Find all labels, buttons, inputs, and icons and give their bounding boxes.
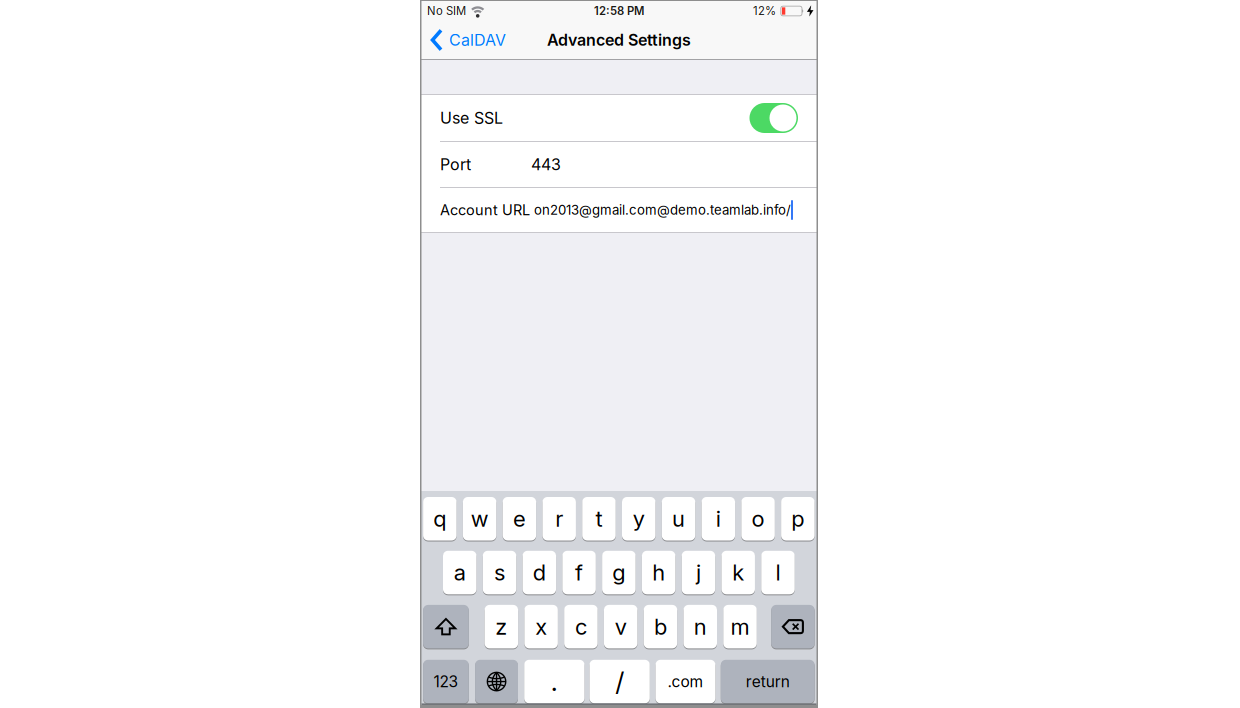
button[interactable]: l (761, 550, 795, 595)
button[interactable]: . (524, 659, 584, 704)
staticText: d (533, 559, 546, 586)
button[interactable]: s (483, 550, 516, 595)
button[interactable]: h (642, 550, 675, 595)
button[interactable]: return (721, 659, 815, 704)
button[interactable]: d (523, 550, 556, 595)
staticText: z (495, 613, 507, 640)
staticText: return (746, 672, 790, 691)
staticText: v (615, 613, 627, 640)
staticText: u (672, 505, 685, 532)
button[interactable]: b (644, 604, 677, 649)
button[interactable]: f (562, 550, 596, 595)
button[interactable]: Back to CalDAV (421, 28, 506, 51)
staticText: p (791, 505, 804, 532)
staticText: l (775, 559, 780, 586)
button[interactable]: Delete (771, 604, 815, 649)
staticText: 443 (531, 155, 561, 174)
button[interactable]: g (602, 550, 636, 595)
button[interactable]: q (423, 496, 457, 541)
button[interactable]: u (662, 496, 695, 541)
button[interactable]: w (463, 496, 496, 541)
staticText: m (730, 613, 749, 640)
button[interactable]: j (682, 550, 715, 595)
button[interactable]: a (443, 550, 476, 595)
staticText: Port (440, 155, 471, 174)
staticText: g (612, 559, 625, 586)
button[interactable]: n (683, 604, 717, 649)
button[interactable]: v (604, 604, 637, 649)
staticText: s (494, 559, 505, 586)
staticText: f (575, 559, 583, 586)
button[interactable]: x (524, 604, 558, 649)
button[interactable]: Port (421, 142, 816, 187)
button[interactable]: o (741, 496, 775, 541)
staticText: e (513, 505, 526, 532)
staticText: Account URL (440, 201, 530, 219)
staticText: k (732, 559, 744, 586)
staticText: c (575, 613, 587, 640)
staticText: o (752, 505, 765, 532)
staticText: t (595, 505, 602, 532)
button[interactable]: Account URL (421, 188, 816, 232)
button[interactable]: Use SSL toggle, on (749, 103, 798, 133)
staticText: r (555, 505, 563, 532)
button[interactable]: t (582, 496, 616, 541)
button[interactable]: r (542, 496, 576, 541)
staticText: 12:58 PM (594, 4, 644, 18)
staticText: q (433, 505, 446, 532)
button[interactable]: c (564, 604, 598, 649)
staticText: .com (667, 672, 703, 691)
staticText: b (654, 613, 667, 640)
staticText: a (454, 559, 466, 586)
staticText: / (615, 666, 624, 697)
button[interactable]: m (723, 604, 757, 649)
button[interactable]: Shift (423, 604, 469, 649)
button[interactable]: k (721, 550, 755, 595)
staticText: j (696, 559, 701, 586)
staticText: CalDAV (449, 30, 506, 50)
button[interactable]: 123 (423, 659, 469, 704)
staticText: Use SSL (440, 108, 503, 128)
staticText: x (535, 613, 547, 640)
staticText: on2013@gmail.com@demo.teamlab.info/ (534, 202, 791, 218)
button[interactable]: p (781, 496, 815, 541)
button[interactable]: i (702, 496, 735, 541)
button[interactable]: Next keyboard (475, 659, 518, 704)
button[interactable]: Use SSL, on (421, 95, 816, 141)
button[interactable]: z (485, 604, 518, 649)
staticText: i (716, 505, 721, 532)
staticText: n (694, 613, 707, 640)
staticText: 123 (433, 672, 458, 691)
staticText: h (652, 559, 665, 586)
staticText: Advanced Settings (547, 30, 691, 50)
button[interactable]: y (622, 496, 655, 541)
staticText: 12% (753, 4, 776, 18)
staticText: y (633, 505, 645, 532)
staticText: No SIM (427, 4, 466, 18)
staticText: w (471, 505, 489, 532)
button[interactable]: / (589, 659, 650, 704)
button[interactable]: .com (655, 659, 715, 704)
staticText: . (551, 666, 558, 697)
button[interactable]: e (503, 496, 536, 541)
